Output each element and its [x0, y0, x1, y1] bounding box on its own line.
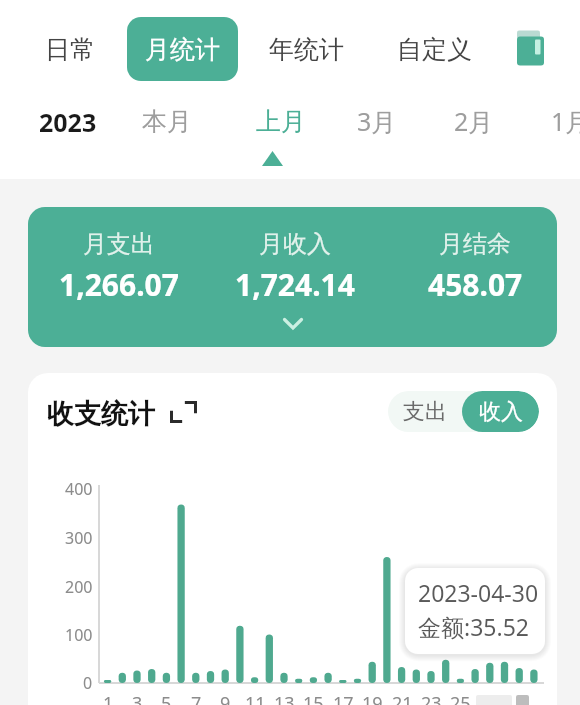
- staticText: 3月: [357, 104, 397, 138]
- staticText: 11: [245, 691, 266, 705]
- staticText: 200: [65, 576, 93, 598]
- staticText: 100: [65, 624, 93, 646]
- staticText: 7: [191, 691, 202, 705]
- staticText: 19: [362, 691, 383, 705]
- staticText: 23: [421, 691, 442, 705]
- button[interactable]: Ledger: [506, 18, 558, 80]
- staticText: 金额:35.52: [418, 611, 529, 642]
- button[interactable]: 2月: [435, 93, 513, 149]
- button[interactable]: 支出: [388, 391, 462, 432]
- staticText: 月支出: [83, 229, 155, 259]
- button[interactable]: 上月: [242, 93, 320, 149]
- button[interactable]: 月统计: [127, 17, 238, 81]
- button[interactable]: 3月: [338, 93, 416, 149]
- staticText: 本月: [142, 106, 192, 137]
- staticText: 月收入: [259, 229, 331, 259]
- staticText: 1,724.14: [235, 264, 355, 305]
- button[interactable]: 本月: [128, 93, 206, 149]
- staticText: 年统计: [269, 34, 344, 65]
- staticText: 收支统计: [47, 397, 155, 431]
- staticText: 日常: [45, 34, 95, 65]
- staticText: 1: [103, 691, 114, 705]
- button[interactable]: 日常: [38, 17, 102, 81]
- button[interactable]: 2023: [25, 94, 111, 150]
- staticText: 0: [83, 672, 93, 694]
- staticText: 收入: [479, 398, 523, 426]
- button[interactable]: 月支出: [28, 207, 557, 347]
- staticText: 2023: [39, 105, 97, 139]
- staticText: 上月: [256, 106, 306, 137]
- staticText: 15: [303, 691, 324, 705]
- staticText: 2月: [454, 104, 494, 138]
- staticText: 3: [132, 691, 143, 705]
- staticText: 月结余: [439, 229, 511, 259]
- staticText: 5: [161, 691, 172, 705]
- button[interactable]: 1月: [532, 93, 580, 149]
- staticText: 9: [220, 691, 231, 705]
- button[interactable]: 收入: [462, 391, 539, 432]
- staticText: 17: [333, 691, 354, 705]
- staticText: 13: [274, 691, 295, 705]
- staticText: 25: [450, 691, 471, 705]
- staticText: 支出: [403, 398, 447, 426]
- button[interactable]: Fullscreen: [170, 401, 197, 423]
- staticText: 1,266.07: [59, 264, 179, 305]
- staticText: 月统计: [145, 34, 220, 65]
- staticText: 自定义: [397, 34, 472, 65]
- button[interactable]: 年统计: [258, 17, 354, 81]
- staticText: 300: [65, 527, 93, 549]
- button[interactable]: 自定义: [386, 17, 482, 81]
- staticText: 458.07: [428, 264, 523, 305]
- staticText: 21: [392, 691, 413, 705]
- staticText: 1月: [551, 104, 580, 138]
- staticText: 2023-04-30: [418, 577, 539, 608]
- staticText: 400: [65, 478, 93, 500]
